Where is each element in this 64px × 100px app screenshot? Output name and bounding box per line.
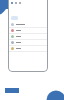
button[interactable] bbox=[8, 28, 48, 33]
button[interactable] bbox=[8, 34, 48, 39]
button[interactable] bbox=[11, 16, 18, 20]
button[interactable]: Logo bbox=[5, 87, 19, 93]
button[interactable] bbox=[8, 40, 48, 45]
button[interactable] bbox=[8, 22, 48, 27]
button[interactable] bbox=[8, 46, 48, 51]
